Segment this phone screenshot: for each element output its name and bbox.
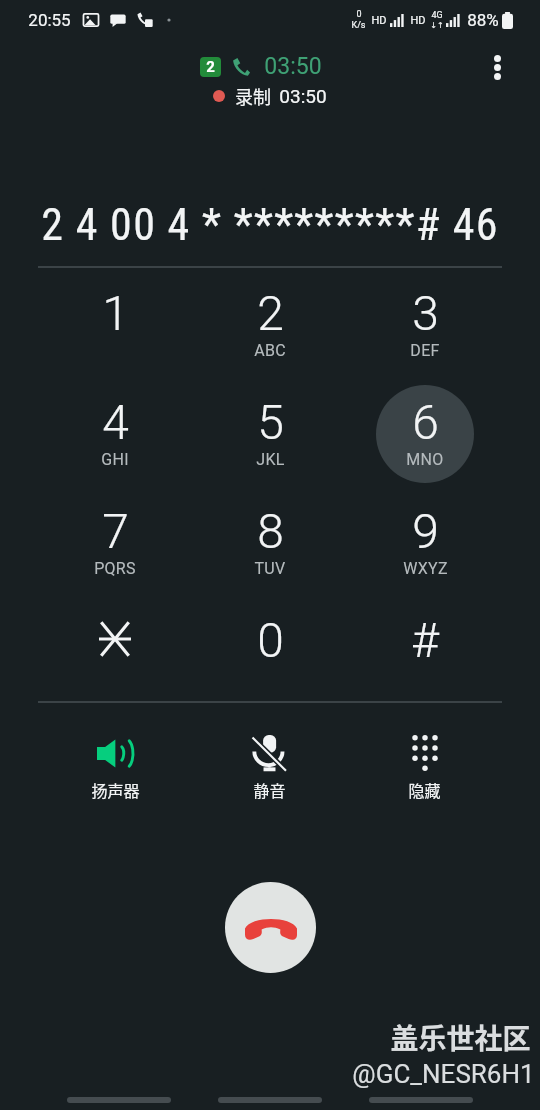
staticText: 0 [356, 9, 362, 20]
button[interactable]: Navigation 2 [218, 1097, 322, 1103]
staticText: 录制 [235, 83, 271, 109]
staticText: 2 4 00 4 * *********# 46 [41, 199, 499, 251]
staticText: 8 [257, 503, 284, 559]
button[interactable]: 1 [38, 282, 192, 391]
staticText: 3 [412, 285, 439, 341]
staticText: # [411, 612, 439, 668]
button[interactable]: End call [225, 882, 316, 973]
staticText: 03:50 [279, 85, 327, 107]
staticText: 20:55 [28, 10, 71, 30]
button[interactable]: 7 [38, 500, 192, 609]
button[interactable]: 5 [192, 391, 347, 500]
staticText: 0 [257, 612, 284, 668]
button[interactable]: More options [475, 45, 519, 89]
staticText: DEF [410, 341, 440, 360]
button[interactable]: # [347, 609, 502, 718]
staticText: JKL [256, 450, 285, 469]
staticText: K/s [351, 20, 366, 31]
staticText: WXYZ [403, 559, 448, 578]
button[interactable]: 隐藏 [347, 735, 502, 801]
button[interactable]: 3 [347, 282, 502, 391]
staticText: 9 [412, 503, 439, 559]
staticText: 2 [257, 285, 284, 341]
button[interactable]: 8 [192, 500, 347, 609]
staticText: @GC_NESR6H1 [352, 1059, 535, 1089]
staticText: 4G [431, 10, 443, 21]
staticText: ↓↑ [430, 21, 444, 30]
staticText: 2 [206, 58, 215, 76]
button[interactable]: Navigation 3 [369, 1097, 473, 1103]
staticText: 4 [102, 394, 129, 450]
button[interactable]: 4 [38, 391, 192, 500]
staticText: 1 [102, 285, 129, 341]
staticText: TUV [254, 559, 286, 578]
staticText: PQRS [94, 559, 136, 578]
staticText: 隐藏 [408, 778, 441, 801]
button[interactable]: 9 [347, 500, 502, 609]
staticText: 5 [257, 394, 284, 450]
staticText: 扬声器 [91, 778, 140, 801]
staticText: 7 [102, 503, 129, 559]
staticText: MNO [406, 450, 444, 469]
staticText: HD [410, 14, 426, 27]
staticText: 88% [467, 10, 499, 30]
button[interactable]: 2 [192, 282, 347, 391]
staticText: 03:50 [264, 53, 322, 80]
button[interactable]: 静音 [192, 735, 347, 801]
staticText: ABC [254, 341, 286, 360]
staticText: GHI [101, 450, 129, 469]
staticText: HD [371, 14, 387, 27]
button[interactable] [38, 609, 192, 718]
staticText: 6 [412, 394, 439, 450]
button[interactable]: Navigation 1 [67, 1097, 171, 1103]
staticText: 盖乐世社区 [390, 1017, 531, 1058]
staticText: 静音 [253, 778, 286, 801]
button[interactable]: 6 [347, 391, 502, 500]
button[interactable]: 0 [192, 609, 347, 718]
button[interactable]: 扬声器 [38, 735, 192, 801]
